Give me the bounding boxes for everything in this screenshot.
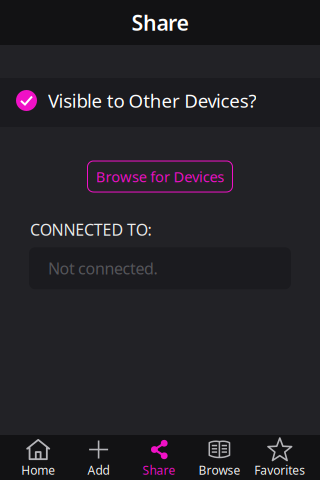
staticText: Favorites (254, 462, 305, 478)
staticText: Not connected. (48, 258, 157, 279)
button[interactable]: Home (8, 435, 68, 480)
staticText: Add (88, 462, 110, 478)
button[interactable]: Add (68, 435, 129, 480)
staticText: Home (21, 462, 55, 478)
button[interactable]: Favorites (250, 435, 310, 480)
staticText: CONNECTED TO: (30, 219, 152, 240)
staticText: Visible to Other Devices? (48, 88, 256, 113)
staticText: Browse (198, 462, 240, 478)
button[interactable]: Visible to Other Devices? (0, 78, 320, 127)
button[interactable]: Browse for Devices (87, 161, 232, 192)
button[interactable]: Browse (189, 435, 250, 480)
button[interactable]: Share (129, 435, 189, 480)
staticText: Browse for Devices (96, 167, 224, 186)
staticText: Share (142, 462, 175, 478)
staticText: Share (131, 8, 188, 37)
